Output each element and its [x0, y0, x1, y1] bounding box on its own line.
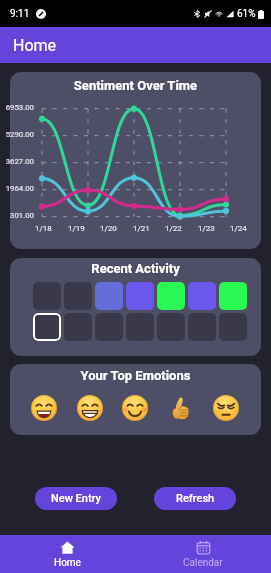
button[interactable]: Smiling face	[122, 395, 148, 421]
button[interactable]: Home	[0, 27, 271, 63]
button[interactable]: New Entry	[35, 487, 117, 510]
staticText: Calendar	[183, 557, 223, 569]
button[interactable]: Pensive face	[213, 395, 239, 421]
staticText: 1/23	[198, 224, 215, 233]
button[interactable]: Smiling face with open mouth	[31, 395, 57, 421]
staticText: 1/24	[230, 224, 247, 233]
button[interactable]	[33, 313, 61, 341]
staticText: Home	[13, 36, 57, 55]
staticText: Recent Activity	[10, 261, 261, 276]
button[interactable]	[188, 313, 216, 341]
staticText: 5290.00	[5, 130, 34, 139]
staticText: 3627.00	[5, 157, 34, 166]
button[interactable]	[33, 282, 61, 310]
button[interactable]	[64, 282, 92, 310]
staticText: 9:11	[10, 8, 30, 20]
button[interactable]: Calendar	[135, 535, 271, 573]
staticText: Sentiment Over Time	[10, 78, 261, 93]
staticText: 1/18	[35, 224, 52, 233]
button[interactable]: Refresh	[154, 487, 236, 510]
staticText: 1/21	[133, 224, 150, 233]
button[interactable]	[64, 313, 92, 341]
button[interactable]	[95, 313, 123, 341]
staticText: 6953.00	[5, 103, 34, 112]
button[interactable]	[126, 313, 154, 341]
button[interactable]: Thumbs up	[168, 395, 194, 421]
staticText: 301.00	[10, 211, 34, 220]
staticText: Refresh	[176, 492, 215, 505]
button[interactable]	[157, 282, 185, 310]
staticText: 1964.00	[5, 184, 34, 193]
button[interactable]	[157, 313, 185, 341]
button[interactable]	[219, 313, 247, 341]
staticText: Home	[54, 557, 81, 569]
staticText: 1/19	[68, 224, 85, 233]
staticText: Your Top Emotions	[10, 368, 261, 383]
button[interactable]	[219, 282, 247, 310]
button[interactable]: Grinning face	[77, 395, 103, 421]
staticText: 1/22	[165, 224, 182, 233]
button[interactable]	[188, 282, 216, 310]
staticText: 61%	[237, 8, 256, 20]
button[interactable]: Home	[0, 535, 135, 573]
button[interactable]	[95, 282, 123, 310]
button[interactable]	[126, 282, 154, 310]
staticText: 1/20	[100, 224, 117, 233]
staticText: New Entry	[51, 492, 101, 505]
